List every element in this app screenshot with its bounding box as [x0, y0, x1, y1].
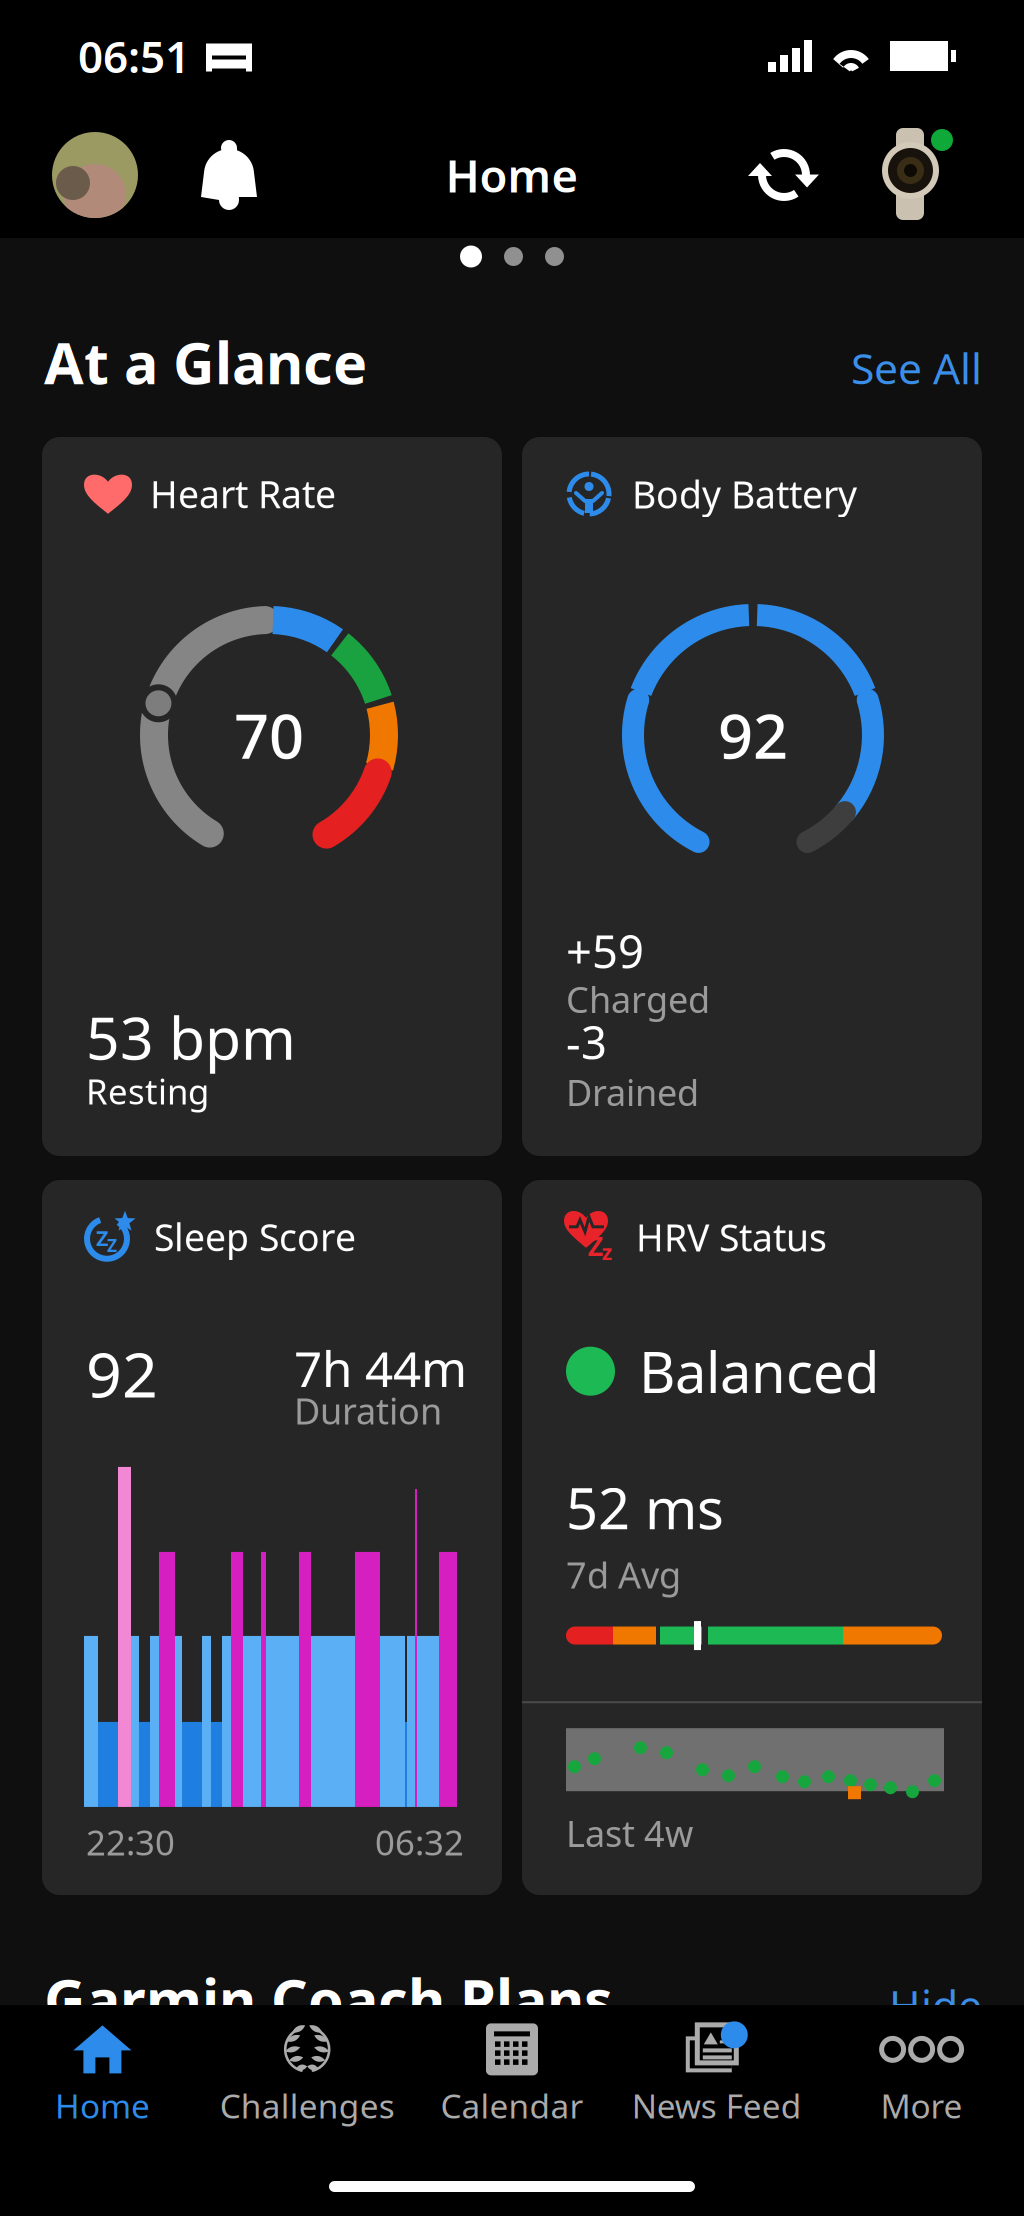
staticText: 7d Avg	[566, 1551, 681, 1598]
staticText: Duration	[294, 1387, 442, 1434]
staticText: Z	[107, 1234, 117, 1257]
staticText: Last 4w	[566, 1809, 693, 1857]
button[interactable]: Hide	[889, 1976, 982, 2033]
staticText: z	[602, 1238, 613, 1266]
staticText: See All	[851, 339, 982, 396]
staticText: Home	[445, 145, 578, 205]
staticText: -3	[566, 1012, 607, 1072]
staticText: 92	[718, 694, 788, 776]
staticText: 70	[234, 694, 304, 776]
button[interactable]: Calendar	[410, 2005, 614, 2145]
staticText: Z	[96, 1224, 108, 1252]
staticText: 52 ms	[566, 1470, 724, 1545]
staticText: Charged	[566, 975, 710, 1023]
staticText: 06:32	[375, 1819, 464, 1865]
staticText: Heart Rate	[150, 469, 336, 519]
button[interactable]: See All	[851, 339, 982, 396]
staticText: Garmin Coach Plans	[44, 1961, 613, 2037]
staticText: Drained	[566, 1068, 699, 1116]
staticText: Calendar	[440, 2083, 583, 2128]
staticText: 22:30	[86, 1819, 175, 1865]
button[interactable]: Profile	[52, 132, 138, 218]
button[interactable]: Z	[522, 1180, 982, 1895]
button[interactable]: More	[819, 2005, 1024, 2145]
staticText: More	[881, 2083, 963, 2128]
button[interactable]: Body Battery	[522, 437, 982, 1156]
staticText: 7h 44m	[294, 1336, 467, 1401]
button[interactable]: Challenges	[205, 2005, 410, 2145]
button[interactable]: News Feed	[614, 2005, 819, 2145]
button[interactable]: Notifications	[190, 129, 268, 221]
staticText: 06:51	[78, 27, 190, 85]
staticText: News Feed	[632, 2083, 802, 2128]
staticText: Body Battery	[632, 469, 857, 519]
staticText: 53 bpm	[86, 998, 296, 1076]
staticText: Z	[588, 1228, 603, 1263]
staticText: Home	[55, 2083, 150, 2128]
button[interactable]: Device	[877, 127, 967, 223]
staticText: Challenges	[220, 2083, 395, 2128]
button[interactable]: Sync	[746, 137, 822, 213]
staticText: 92	[86, 1332, 158, 1415]
button[interactable]: Z	[42, 1180, 502, 1895]
staticText: At a Glance	[44, 324, 367, 400]
button[interactable]: Home	[0, 2005, 205, 2145]
staticText: Hide	[889, 1976, 982, 2033]
staticText: +59	[566, 921, 644, 981]
staticText: Sleep Score	[154, 1212, 356, 1262]
staticText: Resting	[86, 1068, 209, 1114]
button[interactable]: Heart Rate	[42, 437, 502, 1156]
staticText: HRV Status	[636, 1212, 827, 1262]
staticText: Balanced	[639, 1334, 879, 1408]
